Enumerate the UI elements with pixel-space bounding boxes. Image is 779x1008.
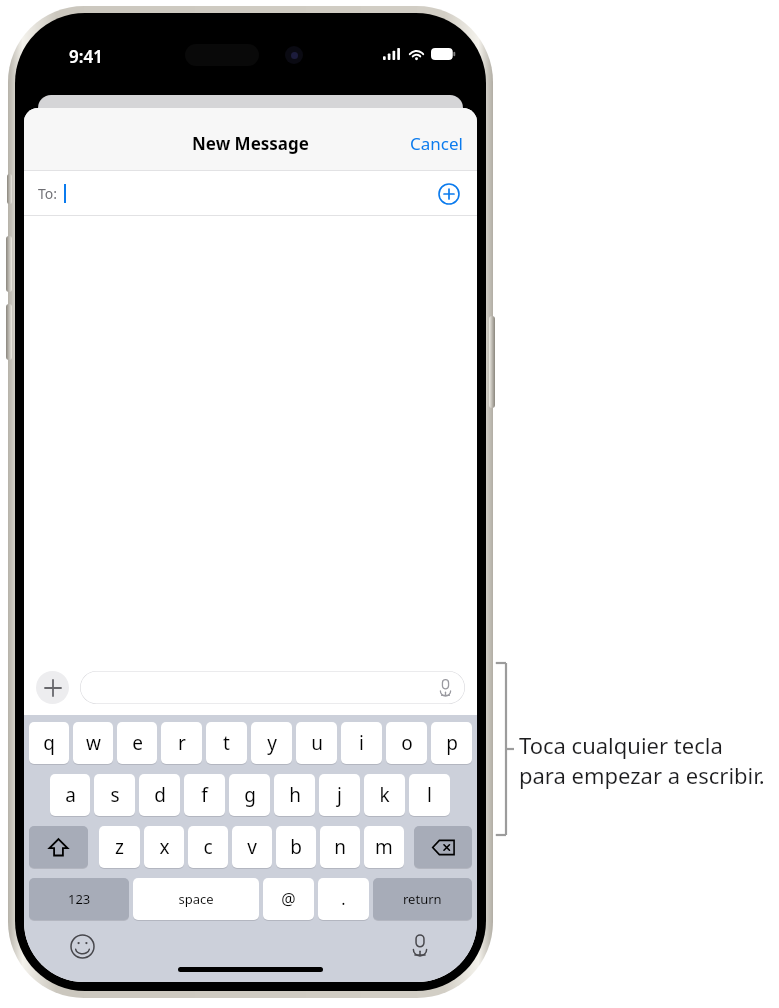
staticText: i	[359, 730, 364, 756]
staticText: z	[115, 834, 124, 860]
button[interactable]	[80, 671, 465, 704]
staticText: m	[375, 834, 393, 860]
staticText: a	[65, 782, 76, 808]
staticText: o	[401, 730, 413, 756]
button[interactable]: g	[229, 774, 270, 816]
staticText: 9:41	[69, 45, 103, 68]
button[interactable]: Add attachment	[36, 671, 69, 704]
staticText: c	[203, 834, 213, 860]
staticText: e	[132, 730, 143, 756]
button[interactable]: 123	[29, 878, 129, 920]
staticText: @	[281, 888, 296, 910]
staticText: .	[341, 888, 346, 910]
button[interactable]: Dictation	[409, 934, 431, 956]
button[interactable]: d	[139, 774, 180, 816]
button[interactable]: .	[318, 878, 369, 920]
staticText: b	[290, 834, 302, 860]
button[interactable]: e	[117, 722, 157, 764]
staticText: Toca cualquier tecla para empezar a escr…	[519, 730, 775, 791]
button[interactable]: y	[251, 722, 292, 764]
staticText: y	[267, 730, 277, 756]
button[interactable]: Shift	[29, 826, 88, 868]
staticText: x	[159, 834, 170, 860]
button[interactable]: c	[188, 826, 228, 868]
button[interactable]: w	[73, 722, 113, 764]
button[interactable]: p	[431, 722, 472, 764]
button[interactable]: i	[341, 722, 382, 764]
button[interactable]: f	[184, 774, 225, 816]
staticText: u	[311, 730, 323, 756]
button[interactable]: t	[206, 722, 247, 764]
staticText: return	[403, 890, 442, 908]
staticText: f	[201, 782, 208, 808]
button[interactable]: k	[364, 774, 405, 816]
button[interactable]: l	[409, 774, 450, 816]
staticText: To:	[38, 184, 58, 203]
button[interactable]: j	[319, 774, 360, 816]
button[interactable]: n	[320, 826, 360, 868]
button[interactable]: s	[94, 774, 135, 816]
staticText: p	[446, 730, 458, 756]
staticText: k	[379, 782, 390, 808]
button[interactable]: Delete	[414, 826, 472, 868]
button[interactable]: a	[50, 774, 90, 816]
button[interactable]: @	[263, 878, 314, 920]
staticText: Cancel	[410, 132, 463, 155]
button[interactable]: r	[161, 722, 202, 764]
staticText: j	[337, 782, 342, 808]
button[interactable]: Emoji	[70, 934, 95, 959]
staticText: l	[427, 782, 432, 808]
staticText: s	[110, 782, 120, 808]
button[interactable]: h	[274, 774, 315, 816]
button[interactable]: v	[232, 826, 272, 868]
staticText: v	[247, 834, 257, 860]
staticText: New Message	[192, 132, 309, 155]
staticText: t	[223, 730, 230, 756]
button[interactable]: b	[276, 826, 316, 868]
staticText: 123	[68, 890, 91, 908]
button[interactable]: Add contact	[433, 178, 465, 210]
button[interactable]: x	[144, 826, 184, 868]
staticText: w	[86, 730, 101, 756]
staticText: d	[154, 782, 166, 808]
staticText: h	[289, 782, 301, 808]
button[interactable]: q	[29, 722, 69, 764]
staticText: r	[178, 730, 186, 756]
button[interactable]: return	[373, 878, 472, 920]
button[interactable]: Cancel	[396, 124, 477, 163]
staticText: space	[178, 890, 214, 908]
staticText: g	[244, 782, 256, 808]
staticText: q	[43, 730, 55, 756]
button[interactable]: m	[364, 826, 404, 868]
button[interactable]: To:	[24, 171, 477, 216]
button[interactable]: o	[386, 722, 427, 764]
staticText: n	[334, 834, 346, 860]
button[interactable]: space	[133, 878, 259, 920]
button[interactable]: z	[99, 826, 140, 868]
button[interactable]: u	[296, 722, 337, 764]
